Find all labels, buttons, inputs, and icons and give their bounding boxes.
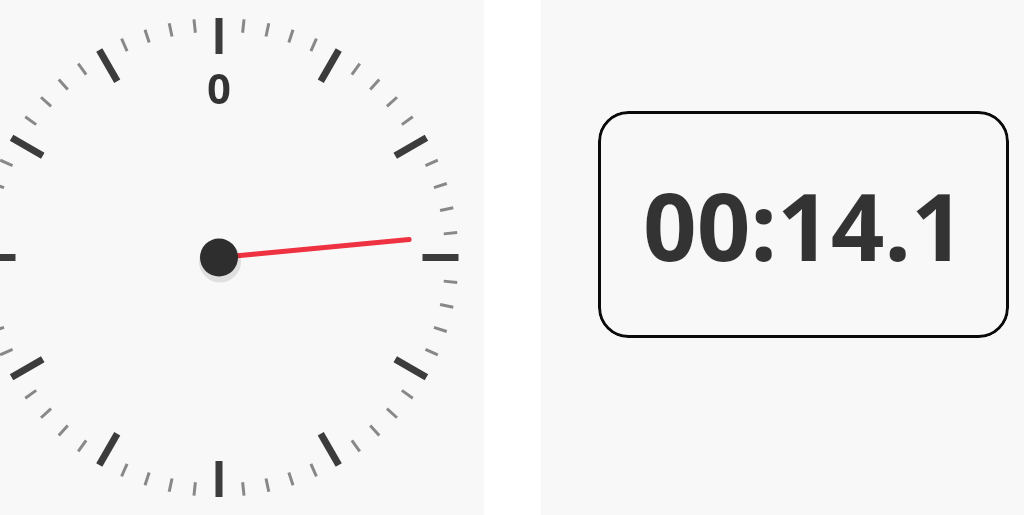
button[interactable]: Stopwatch dial — [0, 0, 484, 515]
staticText: 0 — [199, 59, 239, 116]
button[interactable]: 00:14.1 — [598, 111, 1009, 338]
staticText: 00:14.1 — [643, 161, 965, 289]
